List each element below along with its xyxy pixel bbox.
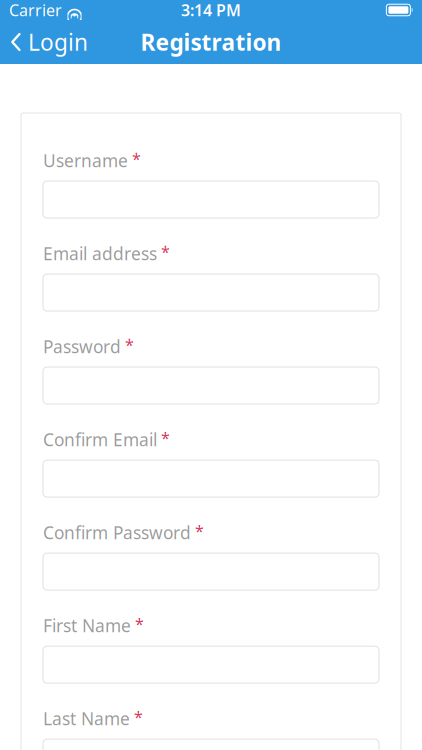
staticText: *: [134, 706, 143, 727]
staticText: Carrier: [9, 0, 62, 21]
staticText: 3:14 PM: [181, 0, 241, 21]
staticText: Last Name: [43, 707, 130, 730]
staticText: Password: [43, 335, 121, 358]
staticText: *: [135, 613, 144, 634]
staticText: *: [195, 520, 204, 541]
button[interactable]: Login: [0, 21, 100, 63]
staticText: *: [161, 241, 170, 262]
staticText: *: [132, 148, 141, 169]
staticText: Registration: [140, 27, 281, 57]
staticText: Login: [28, 27, 88, 57]
staticText: Confirm Password: [43, 521, 191, 544]
staticText: Username: [43, 149, 128, 172]
staticText: Email address: [43, 242, 157, 265]
staticText: First Name: [43, 614, 131, 637]
staticText: *: [125, 334, 134, 355]
staticText: Confirm Email: [43, 428, 157, 451]
staticText: *: [161, 427, 170, 448]
